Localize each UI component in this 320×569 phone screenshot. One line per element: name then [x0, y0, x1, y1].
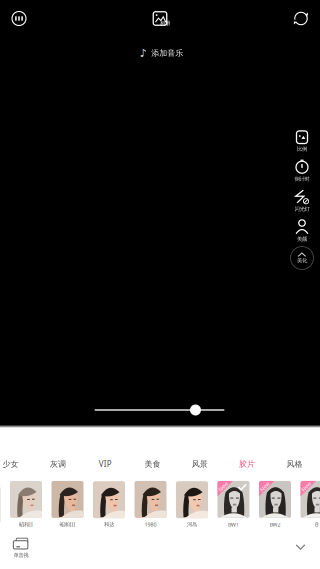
staticText: VIP — [99, 459, 112, 469]
staticText: 昭和II — [19, 521, 33, 528]
button[interactable]: New — [259, 481, 291, 528]
button[interactable]: 相册 — [140, 4, 180, 32]
button[interactable]: 灰调 — [36, 453, 80, 475]
button[interactable]: VIP — [83, 453, 127, 475]
button[interactable]: ♪ — [140, 45, 183, 61]
button[interactable]: New — [300, 481, 320, 528]
button[interactable]: 昭和III — [51, 481, 83, 528]
staticText: ♪ — [140, 47, 147, 59]
button[interactable]: Flip camera — [285, 2, 317, 34]
button[interactable]: 美化 — [289, 245, 315, 271]
staticText: 胶片 — [239, 459, 255, 469]
button[interactable]: 1980 — [134, 481, 166, 528]
staticText: 风景 — [192, 459, 208, 469]
staticText: 比例 — [297, 146, 307, 152]
button[interactable]: 单音视 — [3, 536, 39, 560]
staticText: New — [259, 483, 270, 490]
button[interactable]: 风景 — [178, 453, 222, 475]
staticText: BW1 — [228, 521, 239, 528]
button[interactable]: Close — [3, 2, 35, 34]
staticText: 相册 — [160, 20, 170, 26]
staticText: 美食 — [144, 459, 160, 469]
button[interactable]: New — [217, 481, 249, 528]
button[interactable]: 少女 — [0, 453, 33, 475]
button[interactable]: 河岛 — [176, 481, 208, 528]
button[interactable]: Collapse — [286, 535, 314, 559]
staticText: 少女 — [3, 459, 19, 469]
staticText: 灰调 — [50, 459, 66, 469]
button[interactable]: 昭和II — [10, 481, 42, 528]
button[interactable]: 比例 — [287, 128, 317, 154]
staticText: 添加音乐 — [151, 48, 183, 58]
staticText: 河岛 — [187, 521, 197, 528]
staticText: New — [218, 483, 229, 490]
staticText: 1980 — [144, 521, 156, 528]
staticText: 单音视 — [13, 552, 28, 559]
staticText: New — [301, 483, 312, 490]
button[interactable]: 胶片 — [225, 453, 269, 475]
button[interactable]: 倒计时 — [287, 158, 317, 184]
staticText: B — [315, 521, 318, 528]
staticText: 闪光灯 — [294, 206, 309, 212]
staticText: 美颜 — [297, 236, 307, 242]
button[interactable]: 风格 — [272, 453, 316, 475]
button[interactable]: 闪光灯 — [287, 188, 317, 214]
button[interactable]: 和达 — [93, 481, 125, 528]
staticText: 美化 — [297, 257, 307, 264]
staticText: 倒计时 — [294, 176, 309, 182]
button[interactable]: 美颜 — [287, 218, 317, 244]
staticText: 风格 — [286, 459, 302, 469]
button[interactable]: 美食 — [130, 453, 174, 475]
staticText: BW2 — [269, 521, 280, 528]
staticText: 昭和III — [59, 521, 75, 528]
staticText: 和达 — [104, 521, 114, 528]
